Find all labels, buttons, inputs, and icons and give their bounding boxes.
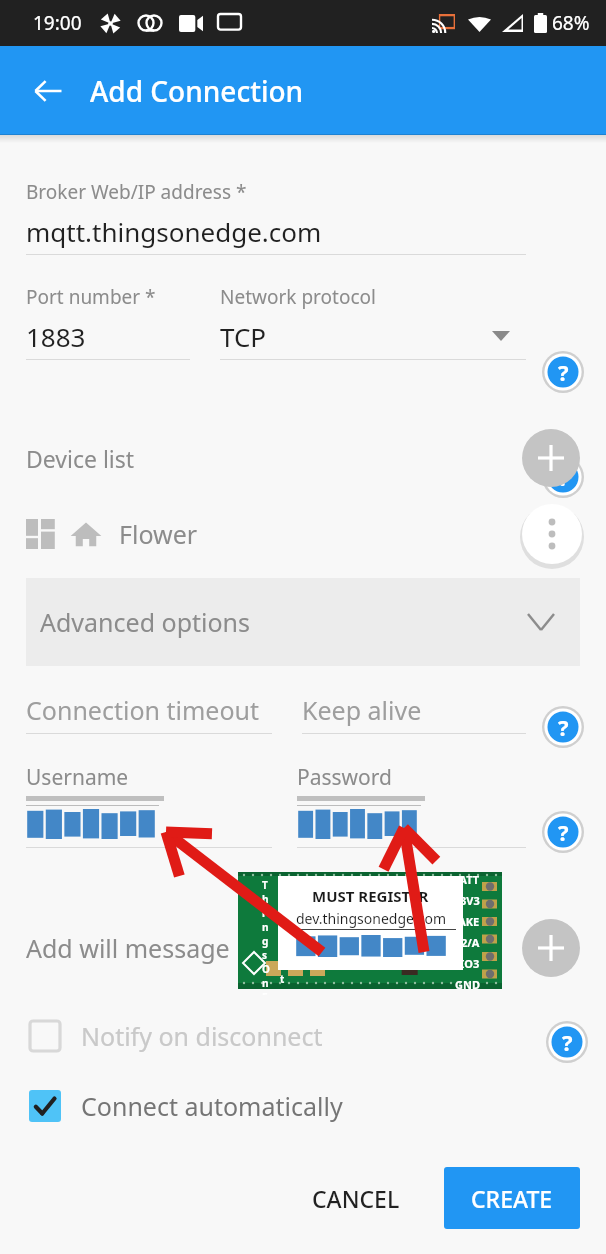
staticText: dev.thingsonedge.com (296, 909, 446, 928)
staticText: Port number * (26, 284, 156, 310)
staticText: Broker Web/IP address * (26, 179, 247, 205)
button[interactable]: More options (522, 504, 582, 564)
staticText: g (262, 934, 269, 948)
button[interactable]: Connect automatically (0, 1073, 606, 1139)
staticText: Add Connection (90, 72, 304, 110)
button[interactable]: Help (546, 1021, 588, 1063)
button[interactable]: Port number * (26, 284, 190, 360)
button[interactable]: Add device (522, 429, 580, 487)
staticText: Connection timeout (26, 693, 260, 727)
button[interactable]: Keep alive (302, 693, 526, 734)
staticText: Password (297, 763, 392, 792)
staticText: 3V3 (460, 893, 480, 908)
staticText: Add will message (26, 931, 230, 965)
staticText: CANCEL (312, 1183, 400, 1214)
staticText: CREATE (471, 1183, 553, 1214)
staticText: BATT (452, 872, 480, 887)
staticText: ? (558, 462, 569, 492)
staticText: 68% (552, 10, 590, 36)
staticText: ? (558, 712, 569, 742)
staticText: i (262, 906, 265, 920)
staticText: Advanced options (40, 605, 251, 639)
button[interactable]: Password (297, 763, 526, 848)
staticText: GND (455, 977, 480, 989)
button[interactable]: Help (542, 351, 584, 393)
button[interactable]: Flower (0, 496, 606, 572)
staticText: mqtt.thingsonedge.com (26, 214, 322, 249)
staticText: Connect automatically (81, 1089, 343, 1123)
staticText: ? (558, 357, 569, 387)
staticText: i (280, 916, 283, 930)
staticText: t (280, 972, 285, 986)
staticText: ? (558, 817, 569, 847)
button[interactable]: Add will message (522, 919, 580, 977)
staticText: O (262, 962, 270, 976)
button[interactable]: Help (542, 811, 584, 853)
staticText: h (262, 892, 269, 906)
staticText: Device list (26, 443, 135, 474)
staticText: 19:00 (33, 10, 82, 36)
staticText: n (262, 976, 269, 990)
staticText: ? (562, 1027, 573, 1057)
staticText: 1883 (26, 319, 86, 354)
button[interactable]: Notify on disconnect (0, 1003, 606, 1069)
button[interactable]: Network protocol (220, 284, 526, 360)
staticText: e (280, 958, 286, 972)
staticText: IO3 (460, 956, 480, 971)
staticText: c (280, 930, 286, 944)
button[interactable]: Broker Web/IP address * (26, 179, 526, 255)
staticText: Network protocol (220, 284, 376, 310)
staticText: Keep alive (302, 693, 422, 727)
staticText: Username (26, 763, 129, 792)
button[interactable]: CANCEL (294, 1167, 418, 1229)
button[interactable]: Help (542, 706, 584, 748)
staticText: TCP (220, 319, 267, 354)
staticText: WAKE (448, 914, 480, 929)
staticText: Flower (119, 517, 198, 551)
staticText: IO2/A (448, 935, 480, 950)
button[interactable]: Back (26, 69, 70, 113)
staticText: r (280, 902, 285, 916)
staticText (280, 986, 283, 1000)
button[interactable]: Advanced options (26, 578, 580, 666)
staticText: Notify on disconnect (81, 1019, 323, 1053)
button[interactable]: CREATE (444, 1167, 580, 1229)
button[interactable]: Username (26, 763, 272, 848)
button[interactable]: Connection timeout (26, 693, 272, 734)
staticText: T (262, 878, 268, 892)
staticText: MUST REGISTER (312, 886, 429, 906)
staticText: n (262, 920, 269, 934)
staticText: s (262, 948, 268, 962)
button[interactable]: Help (542, 456, 584, 498)
